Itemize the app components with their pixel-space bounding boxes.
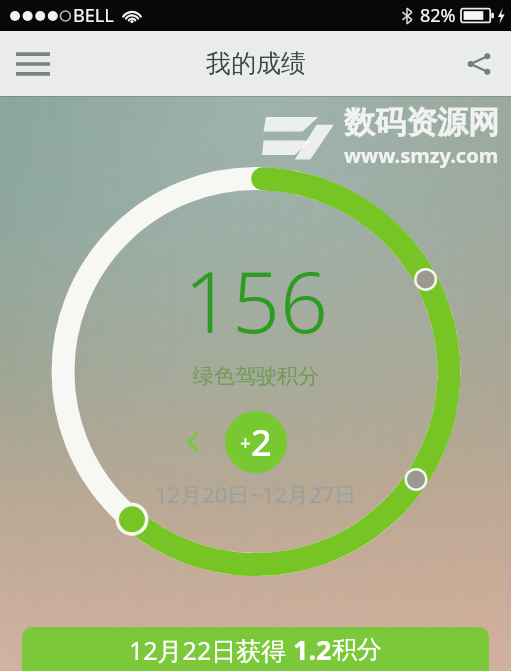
staticText: BELL [73, 3, 114, 28]
staticText: 我的成绩 [206, 48, 306, 79]
button[interactable]: Share [455, 40, 503, 88]
staticText: 82% [420, 3, 456, 28]
button[interactable]: Menu [8, 39, 58, 89]
staticText: + [240, 430, 251, 456]
staticText: 2 [251, 418, 272, 467]
staticText: 12月20日~12月27日 [155, 479, 357, 509]
button[interactable]: Previous week [175, 424, 211, 460]
staticText: 156 [184, 243, 328, 357]
staticText: www.smzy.com [344, 142, 499, 169]
staticText: 1.2 [293, 631, 332, 668]
button[interactable]: 12月22日获得 [22, 627, 489, 671]
button[interactable]: Next week [301, 424, 337, 460]
staticText: 12月22日获得 [129, 633, 293, 667]
staticText: 积分 [332, 634, 382, 665]
button[interactable]: + [225, 411, 287, 473]
staticText: 绿色驾驶积分 [193, 363, 319, 389]
staticText: 数码资源网 [344, 103, 499, 142]
